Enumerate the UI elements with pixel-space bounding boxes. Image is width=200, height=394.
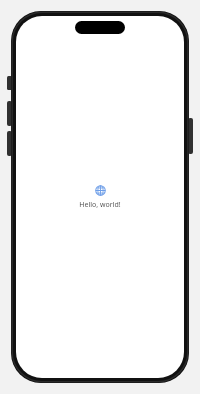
button[interactable]: Volume up (7, 101, 12, 126)
staticText: Hello, world! (79, 200, 121, 210)
button[interactable]: Power (188, 118, 193, 154)
button[interactable]: Silent switch (7, 76, 12, 90)
other: Globe (95, 185, 106, 196)
button[interactable]: Volume down (7, 131, 12, 156)
